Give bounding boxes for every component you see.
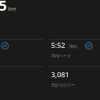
- staticText: km: [8, 5, 16, 12]
- button[interactable]: Pace source: [84, 41, 93, 50]
- staticText: 3,081: [51, 69, 69, 79]
- staticText: 5: [0, 0, 6, 15]
- staticText: 平均ペース: [51, 53, 71, 59]
- staticText: 合計カロリー: [51, 82, 75, 88]
- staticText: /km: [68, 43, 76, 49]
- button[interactable]: Distance source: [0, 41, 9, 50]
- staticText: 5:52: [51, 40, 65, 50]
